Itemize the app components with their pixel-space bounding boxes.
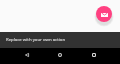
button[interactable]: Back (21, 49, 32, 60)
button[interactable]: Recent apps (88, 49, 99, 60)
button[interactable]: Home (54, 49, 65, 60)
button[interactable]: Replace with your own action (0, 32, 120, 48)
button[interactable]: Compose email (96, 6, 112, 22)
staticText: Replace with your own action (6, 36, 66, 42)
